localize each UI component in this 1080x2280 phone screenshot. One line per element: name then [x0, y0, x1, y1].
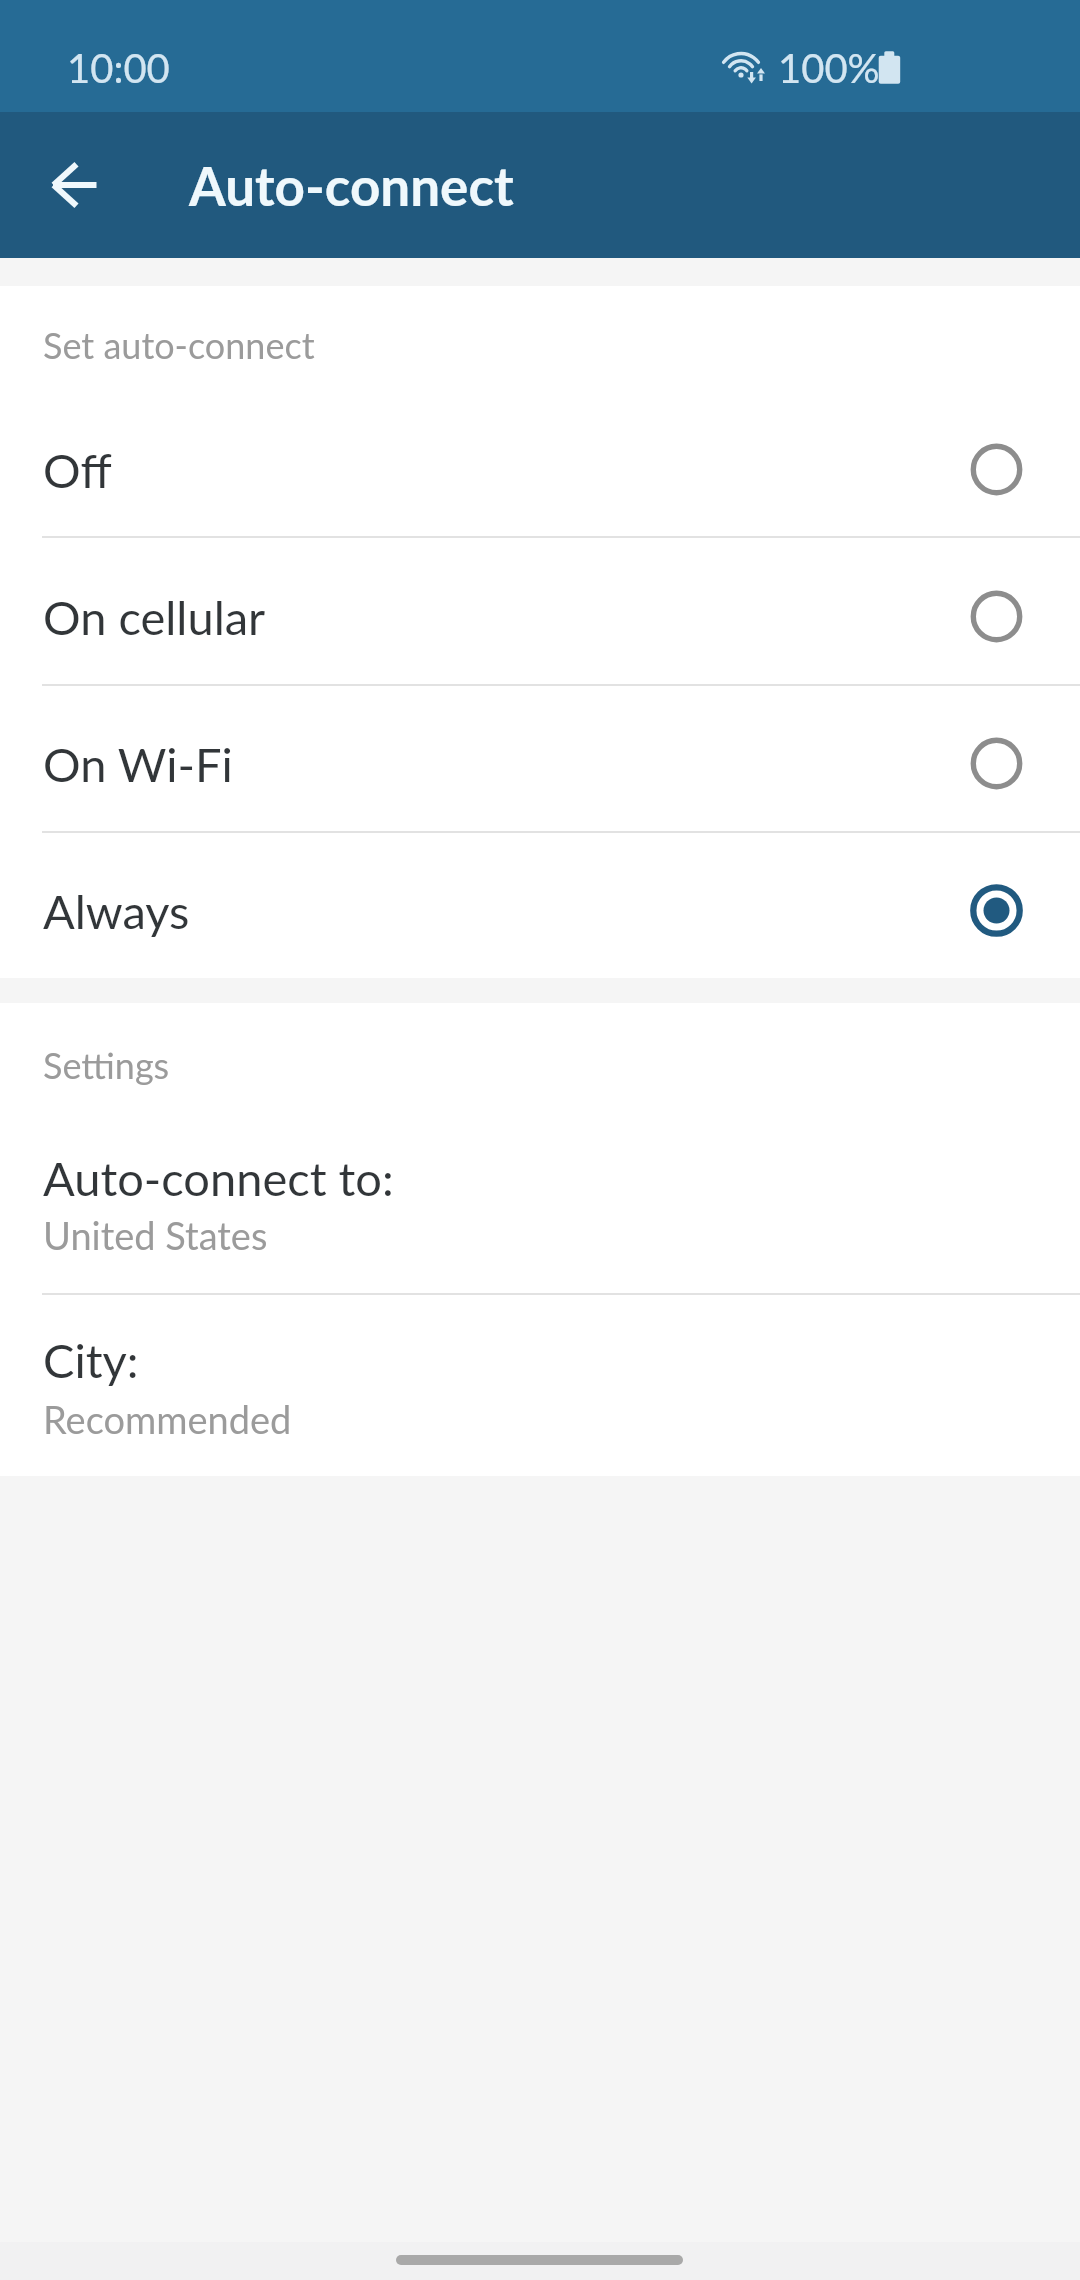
staticText: Always [43, 883, 190, 939]
button[interactable]: On cellular [0, 537, 1080, 684]
button[interactable]: City: [0, 1293, 1080, 1476]
button[interactable]: Navigate up [28, 139, 120, 231]
staticText: 10:00 [67, 44, 170, 92]
staticText: Set auto-connect [43, 323, 315, 366]
staticText: Auto-connect to: [43, 1150, 394, 1206]
button[interactable]: Home [396, 2255, 683, 2265]
staticText: Off [43, 442, 112, 498]
staticText: On cellular [43, 589, 266, 645]
button[interactable]: On Wi-Fi [0, 684, 1080, 831]
staticText: 100% [778, 44, 880, 92]
staticText: Recommended [43, 1396, 292, 1442]
staticText: Auto-connect [189, 154, 514, 218]
staticText: City: [43, 1332, 139, 1388]
staticText: Settings [43, 1043, 170, 1086]
staticText: United States [43, 1212, 268, 1258]
button[interactable]: Auto-connect to: [0, 1113, 1080, 1293]
button[interactable]: Always [0, 831, 1080, 978]
button[interactable]: Off [0, 390, 1080, 537]
staticText: On Wi-Fi [43, 736, 233, 792]
